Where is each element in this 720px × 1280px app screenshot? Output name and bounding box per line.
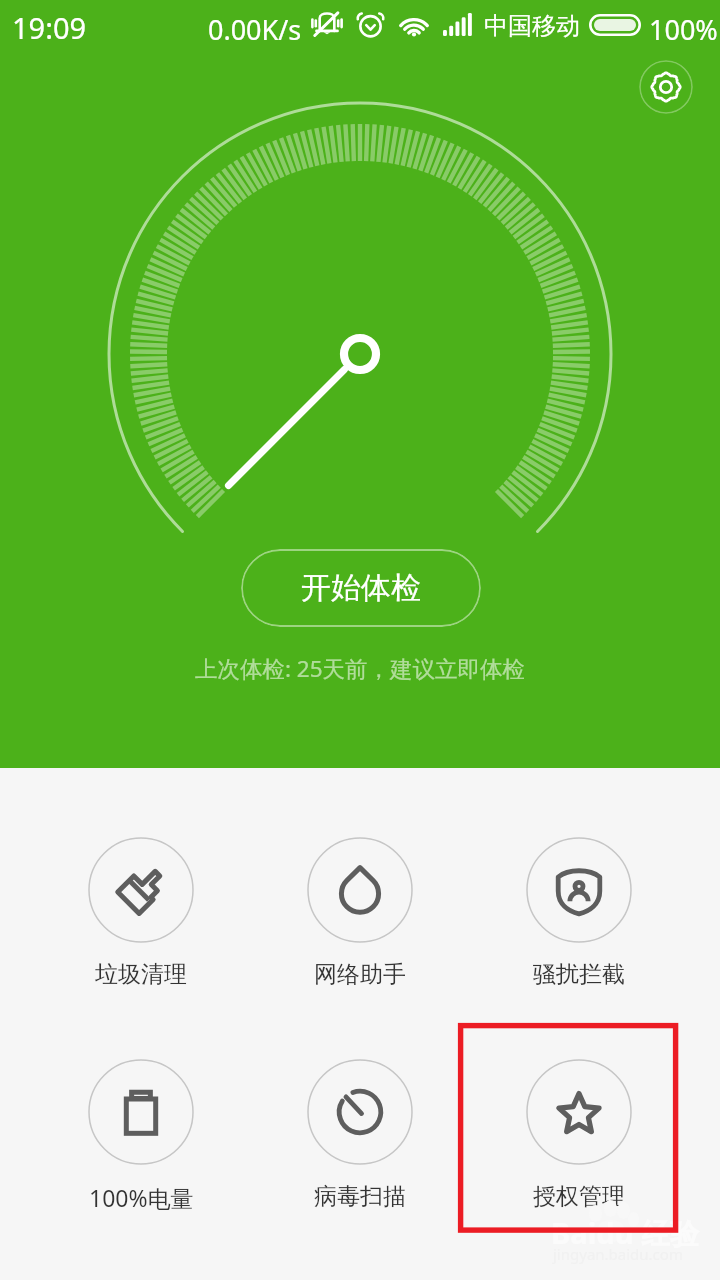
- staticText: 中国移动: [484, 11, 580, 41]
- button[interactable]: 网络助手: [250, 837, 469, 989]
- button[interactable]: 授权管理: [469, 1059, 688, 1211]
- staticText: Baidu 经验: [551, 1213, 700, 1253]
- button[interactable]: 病毒扫描: [250, 1059, 469, 1211]
- button[interactable]: 垃圾清理: [32, 837, 250, 989]
- staticText: 100%电量: [89, 1182, 194, 1213]
- staticText: 19:09: [12, 8, 87, 47]
- staticText: 病毒扫描: [314, 1182, 406, 1211]
- button[interactable]: 骚扰拦截: [469, 837, 688, 989]
- staticText: 开始体检: [301, 569, 421, 607]
- staticText: 100%: [649, 11, 718, 48]
- staticText: 授权管理: [533, 1182, 625, 1211]
- button[interactable]: 100%电量: [32, 1059, 250, 1213]
- staticText: 垃圾清理: [95, 960, 187, 989]
- staticText: 上次体检: 25天前，建议立即体检: [0, 653, 720, 684]
- button[interactable]: Settings: [639, 60, 693, 114]
- staticText: 骚扰拦截: [533, 960, 625, 989]
- staticText: 0.00K/s: [208, 11, 302, 48]
- staticText: 网络助手: [314, 960, 406, 989]
- button[interactable]: 开始体检: [241, 549, 481, 627]
